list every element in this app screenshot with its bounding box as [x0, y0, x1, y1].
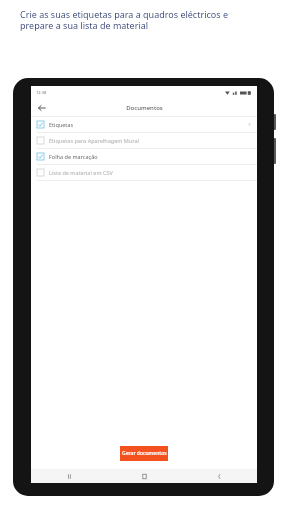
button[interactable]: Back: [35, 101, 49, 115]
button[interactable]: Lista de material em CSV: [31, 165, 257, 180]
button[interactable]: Recents: [31, 469, 107, 483]
button[interactable]: Etiquetas para Aparelhagem Mural: [31, 133, 257, 148]
staticText: Documentos: [126, 104, 163, 112]
button[interactable]: Etiquetas: [31, 117, 257, 132]
staticText: Lista de material em CSV: [49, 169, 113, 176]
staticText: Etiquetas para Aparelhagem Mural: [49, 137, 139, 144]
staticText: Gerar documentos: [122, 450, 167, 457]
staticText: Crie as suas etiquetas para a quadros el…: [20, 8, 228, 32]
staticText: 12:38: [36, 90, 47, 95]
staticText: Folha de marcação: [49, 153, 98, 160]
button[interactable]: Home: [107, 469, 182, 483]
staticText: Etiquetas: [49, 121, 74, 128]
button[interactable]: Back: [182, 469, 257, 483]
button[interactable]: Gerar documentos: [120, 446, 168, 461]
button[interactable]: Folha de marcação: [31, 149, 257, 164]
